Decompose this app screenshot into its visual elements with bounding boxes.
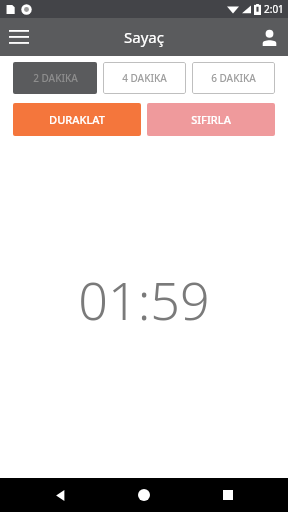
staticText: Sayaç: [124, 27, 164, 47]
button[interactable]: 2 DAKIKA: [13, 62, 97, 94]
staticText: 2:01: [264, 2, 284, 16]
button[interactable]: DURAKLAT: [13, 103, 141, 136]
button[interactable]: Recent apps: [204, 478, 252, 512]
button[interactable]: Back: [36, 478, 84, 512]
button[interactable]: Menu: [0, 18, 38, 56]
staticText: DURAKLAT: [49, 112, 105, 127]
button[interactable]: Home: [120, 478, 168, 512]
staticText: 4 DAKIKA: [122, 71, 167, 85]
button[interactable]: Account: [250, 18, 288, 56]
staticText: 01:59: [78, 264, 210, 335]
button[interactable]: 4 DAKIKA: [103, 62, 186, 94]
button[interactable]: 6 DAKIKA: [192, 62, 275, 94]
staticText: 6 DAKIKA: [211, 71, 256, 85]
staticText: 2 DAKIKA: [33, 71, 78, 85]
button[interactable]: SIFIRLA: [147, 103, 275, 136]
staticText: SIFIRLA: [191, 112, 231, 127]
